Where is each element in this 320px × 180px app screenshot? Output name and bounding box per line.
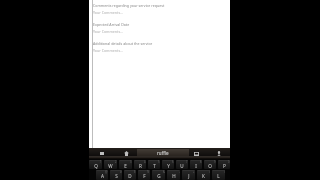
staticText: H	[172, 173, 176, 179]
button[interactable]: 3	[119, 160, 132, 169]
staticText: I	[195, 163, 197, 169]
staticText: O	[208, 163, 212, 169]
button[interactable]: 0	[218, 160, 230, 169]
button[interactable]: 1	[89, 160, 102, 169]
button[interactable]: Hide keyboard	[96, 148, 107, 159]
staticText: Your Comments...	[93, 48, 123, 53]
button[interactable]: Comments regarding your service request	[93, 3, 165, 15]
staticText: E	[124, 163, 127, 169]
staticText: U	[180, 163, 184, 169]
staticText: )	[224, 170, 225, 174]
staticText: 8	[200, 160, 202, 164]
staticText: Y	[167, 163, 170, 169]
button[interactable]: 5	[148, 160, 160, 169]
staticText: T	[153, 163, 156, 169]
staticText: &	[163, 170, 165, 174]
staticText: 1	[100, 160, 102, 164]
button[interactable]: $	[124, 170, 136, 180]
staticText: Your Comments...	[93, 10, 123, 15]
button[interactable]: Voice input	[213, 148, 224, 159]
staticText: Q	[94, 163, 98, 169]
staticText: (	[209, 170, 210, 174]
staticText: -	[179, 170, 180, 174]
staticText: Comments regarding your service request	[93, 3, 165, 8]
staticText: #	[120, 170, 122, 174]
staticText: 4	[144, 160, 146, 164]
button[interactable]: Home	[121, 148, 132, 159]
button[interactable]: -	[167, 170, 180, 180]
staticText: F	[143, 173, 146, 179]
button[interactable]: Expected Arrival Date	[93, 22, 130, 34]
button[interactable]: Change input method	[191, 148, 202, 159]
staticText: G	[157, 173, 161, 179]
button[interactable]: (	[197, 170, 210, 180]
staticText: +	[193, 170, 195, 174]
button[interactable]: +	[182, 170, 195, 180]
staticText: Your Comments...	[93, 29, 123, 34]
staticText: W	[108, 163, 113, 169]
staticText: ruffle	[157, 150, 169, 156]
staticText: $	[134, 170, 136, 174]
button[interactable]: 9	[204, 160, 216, 169]
staticText: R	[139, 163, 142, 169]
staticText: J	[188, 173, 190, 179]
button[interactable]: 8	[190, 160, 202, 169]
button[interactable]: 6	[162, 160, 174, 169]
staticText: P	[223, 163, 226, 169]
staticText: 6	[172, 160, 174, 164]
staticText: 2	[115, 160, 117, 164]
staticText: 3	[130, 160, 132, 164]
button[interactable]: #	[110, 170, 122, 180]
staticText: 5	[158, 160, 160, 164]
button[interactable]: &	[152, 170, 165, 180]
staticText: D	[128, 173, 132, 179]
staticText: Expected Arrival Date	[93, 22, 130, 27]
button[interactable]: 7	[176, 160, 188, 169]
button[interactable]: )	[212, 170, 225, 180]
staticText: 0	[228, 160, 230, 164]
staticText: A	[101, 173, 104, 179]
button[interactable]: 4	[134, 160, 146, 169]
staticText: 7	[186, 160, 188, 164]
button[interactable]: Additional details about the service	[93, 41, 153, 53]
staticText: L	[217, 173, 220, 179]
staticText: S	[115, 173, 118, 179]
button[interactable]: %	[138, 170, 150, 180]
staticText: K	[202, 173, 205, 179]
button[interactable]: @	[96, 170, 108, 180]
staticText: 9	[214, 160, 216, 164]
button[interactable]: ruffle	[137, 149, 189, 156]
button[interactable]: 2	[104, 160, 117, 169]
staticText: @	[105, 170, 108, 174]
staticText: Additional details about the service	[93, 41, 153, 46]
staticText: %	[147, 170, 150, 174]
